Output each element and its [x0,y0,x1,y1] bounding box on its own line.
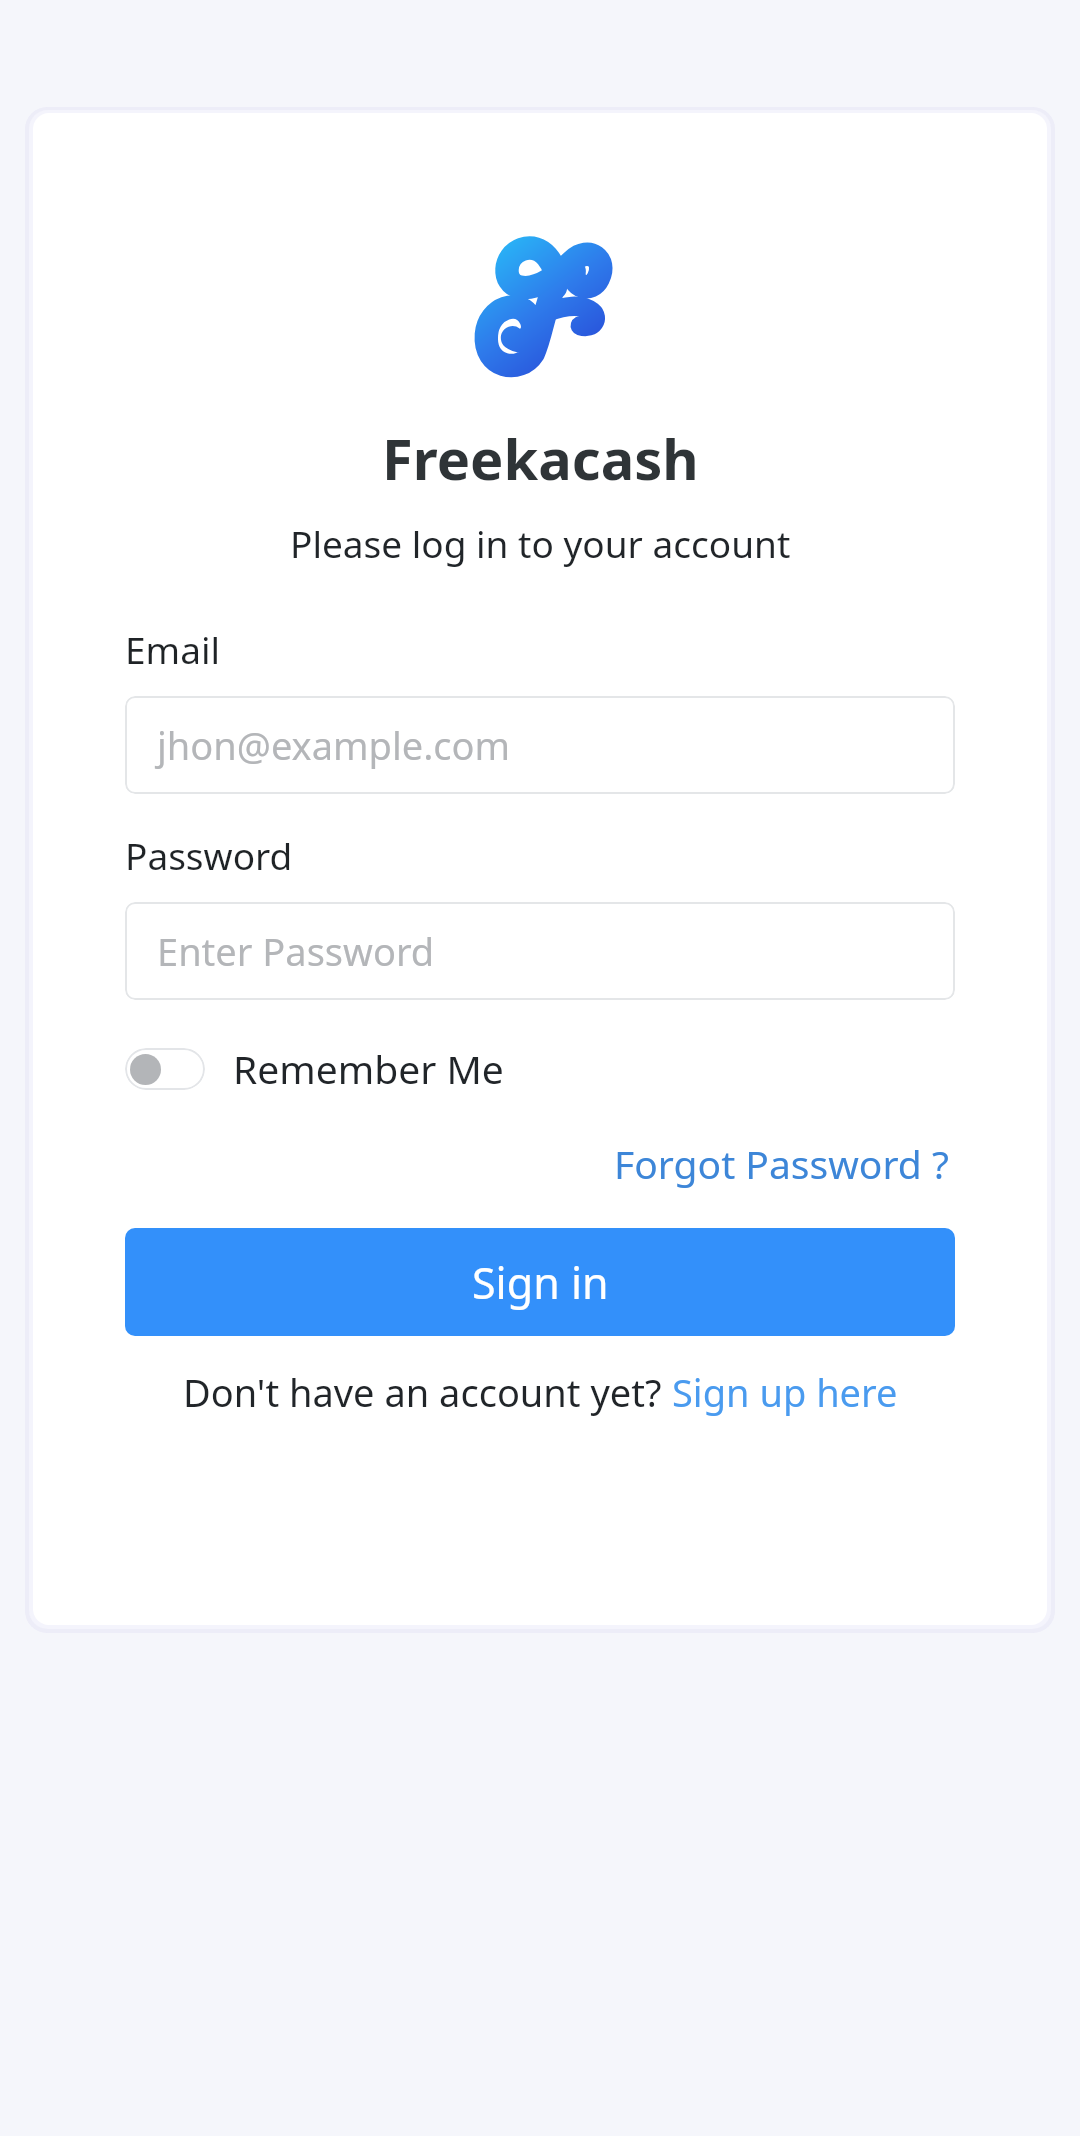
staticText: Please log in to your account [290,518,791,568]
button[interactable]: Remember Me toggle [125,1048,205,1090]
staticText: jhon@example.com [157,719,511,771]
staticText: Password [125,830,293,880]
staticText: Forgot Password ? [614,1137,949,1190]
button[interactable]: Forgot Password ? [608,1131,955,1196]
button[interactable]: Sign in [125,1228,955,1336]
button[interactable]: jhon@example.com [125,696,955,794]
staticText: Enter Password [157,925,435,977]
staticText: Remember Me [233,1042,504,1095]
staticText: Sign up here [672,1366,898,1418]
staticText: Sign in [472,1253,609,1312]
staticText: Don't have an account yet? [183,1366,672,1418]
staticText: Email [125,624,221,674]
button[interactable]: Remember Me toggle [125,1034,504,1103]
button[interactable]: Sign up here [672,1366,898,1418]
button[interactable]: Enter Password [125,902,955,1000]
staticText: Freekacash [382,420,699,496]
